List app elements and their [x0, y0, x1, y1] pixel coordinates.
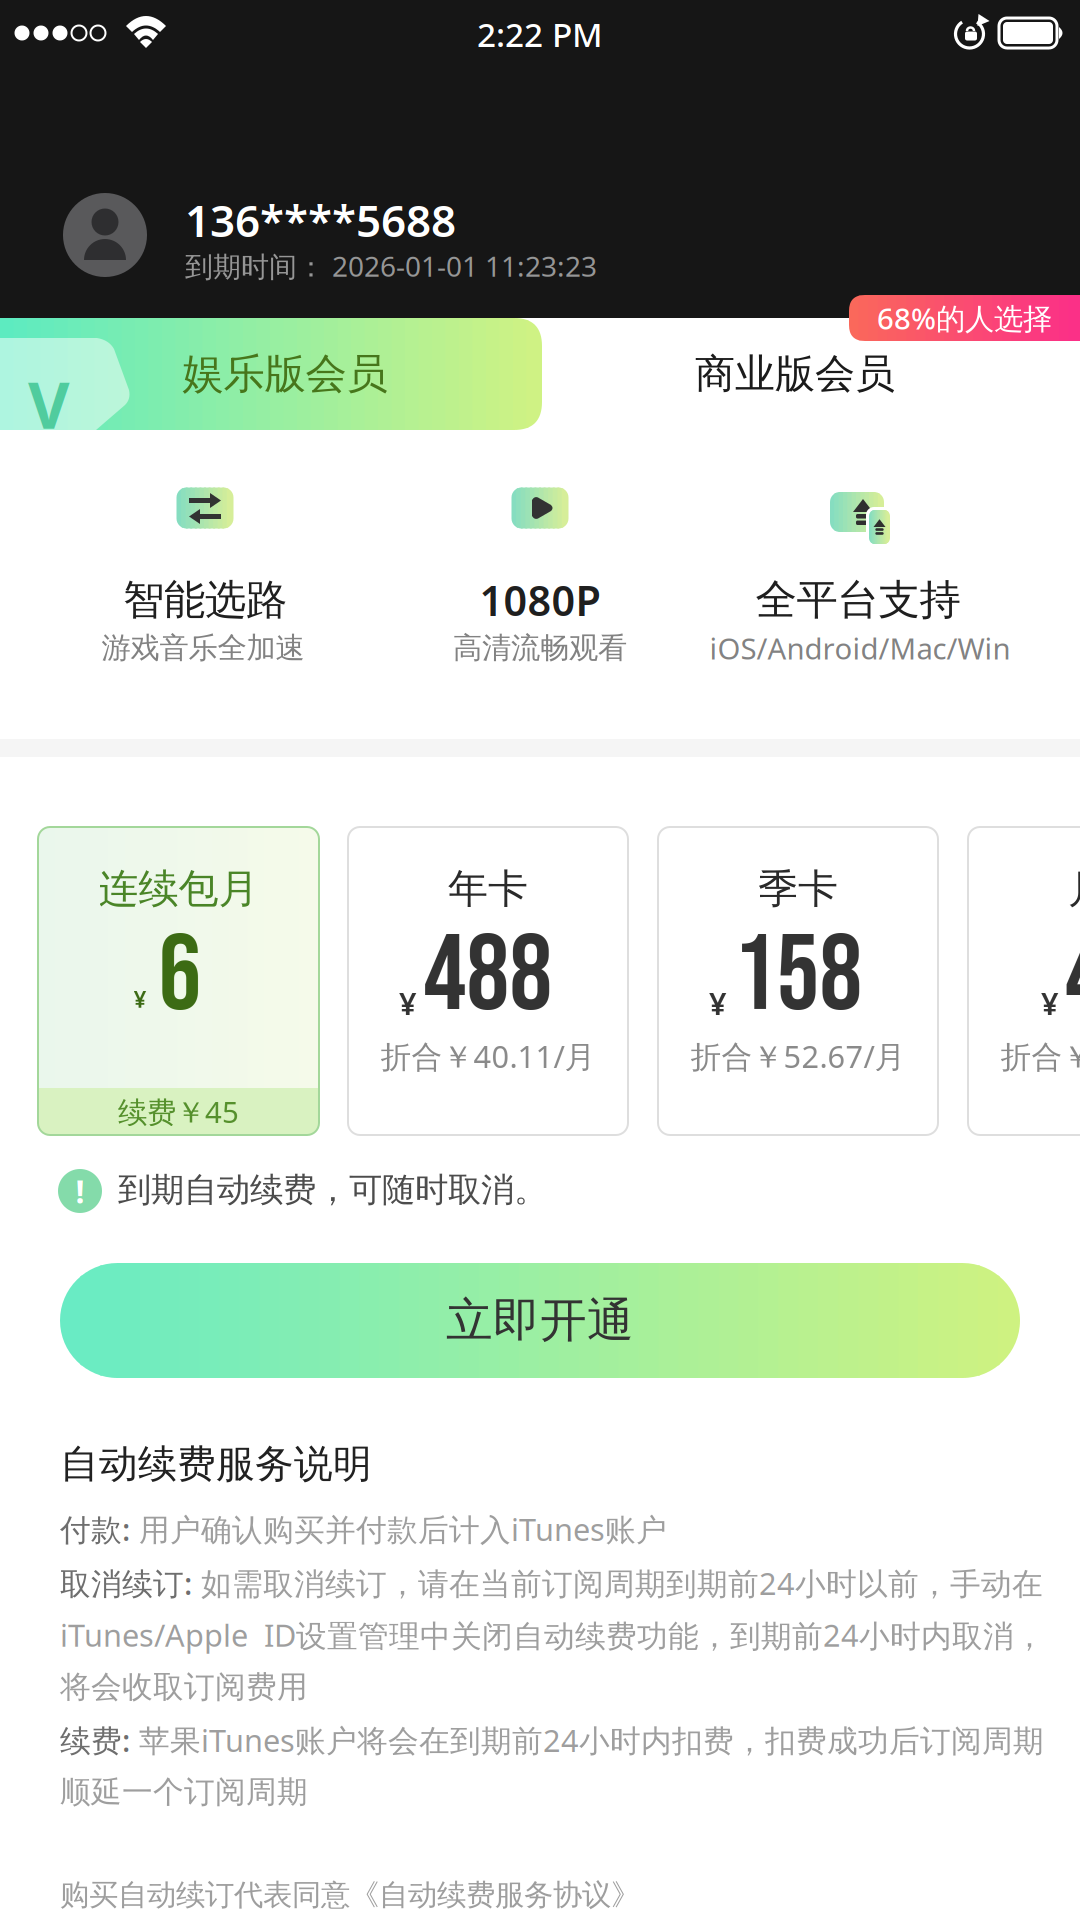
staticText: 智能选路	[123, 575, 287, 625]
staticText: 自动续费服务说明	[60, 1440, 372, 1488]
staticText: 到期时间： 2026-01-01 11:23:23	[185, 247, 597, 285]
button[interactable]: 季卡	[658, 827, 938, 1135]
staticText: 68%的人选择	[877, 298, 1052, 337]
button[interactable]: 商业版会员	[595, 318, 995, 430]
staticText: 用户确认购买并付款后计入iTunes账户	[130, 1509, 667, 1549]
staticText: 连续包月	[98, 864, 258, 913]
staticText: 商业版会员	[695, 349, 895, 398]
staticText: 全平台支持	[755, 575, 960, 625]
staticText: 折合￥40.11/月	[380, 1036, 595, 1076]
staticText: 6	[158, 913, 201, 1041]
button[interactable]: 月卡	[968, 827, 1080, 1135]
staticText: 到期自动续费，可随时取消。	[118, 1169, 547, 1210]
staticText: 苹果iTunes账户将会在到期前24小时内扣费，扣费成功后订阅周期	[130, 1720, 1044, 1760]
staticText: !	[75, 1170, 84, 1212]
staticText: ¥	[1041, 983, 1059, 1023]
staticText: iOS/Android/Mac/Win	[709, 628, 1010, 667]
staticText: 季卡	[758, 864, 838, 913]
staticText: 月卡	[1068, 864, 1080, 913]
staticText: 年卡	[448, 864, 528, 913]
staticText: 取消续订:	[60, 1563, 192, 1603]
staticText: 1080P	[479, 573, 600, 627]
staticText: 488	[423, 913, 552, 1041]
staticText: 顺延一个订阅周期	[60, 1773, 308, 1811]
staticText: 续费￥45	[118, 1092, 239, 1131]
staticText: 购买自动续订代表同意《自动续费服务协议》	[60, 1877, 640, 1913]
button[interactable]: 立即开通	[60, 1263, 1020, 1378]
staticText: 136****5688	[185, 191, 456, 249]
staticText: 将会收取订阅费用	[60, 1668, 308, 1706]
staticText: 折合￥45.00/月	[1000, 1036, 1080, 1076]
button[interactable]: 年卡	[348, 827, 628, 1135]
staticText: ¥	[399, 983, 417, 1023]
staticText: 折合￥52.67/月	[690, 1036, 905, 1076]
staticText: 付款:	[60, 1509, 130, 1549]
button[interactable]: 购买自动续订代表同意《自动续费服务协议》	[60, 1877, 860, 1913]
button[interactable]: 续费￥45	[38, 827, 319, 1135]
staticText: 如需取消续订，请在当前订阅周期到期前24小时以前，手动在	[192, 1563, 1043, 1603]
staticText: ¥	[709, 983, 727, 1023]
staticText: 游戏音乐全加速	[101, 630, 304, 666]
staticText: 高清流畅观看	[453, 630, 627, 666]
staticText: 45	[1065, 913, 1080, 1041]
staticText: 娱乐版会员	[182, 349, 387, 399]
staticText: 2:22 PM	[477, 12, 603, 56]
staticText: V	[28, 361, 70, 446]
staticText: 立即开通	[446, 1292, 634, 1349]
staticText: 续费:	[60, 1720, 130, 1760]
staticText: 158	[733, 913, 862, 1041]
staticText: iTunes/Apple ID设置管理中关闭自动续费功能，到期前24小时内取消，	[60, 1615, 1045, 1655]
staticText: ¥	[133, 984, 146, 1014]
button[interactable]: 娱乐版会员	[0, 318, 542, 430]
